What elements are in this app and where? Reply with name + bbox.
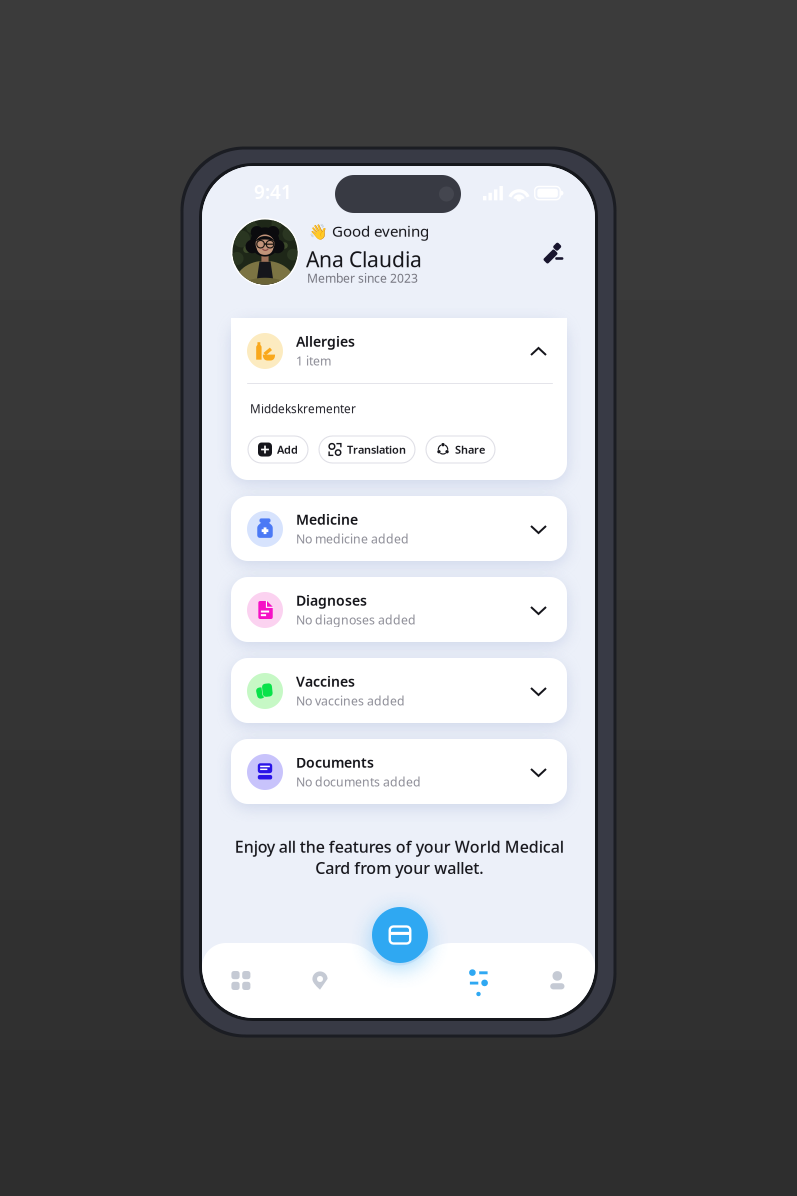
- button[interactable]: Edit profile: [535, 241, 577, 283]
- staticText: No vaccines added: [296, 693, 405, 709]
- button[interactable]: Health data: [469, 968, 489, 998]
- button[interactable]: Translation: [319, 436, 415, 463]
- staticText: Medicine: [296, 510, 358, 529]
- staticText: Enjoy all the features of your World Med…: [234, 836, 563, 878]
- staticText: Vaccines: [296, 672, 355, 691]
- button[interactable]: Documents: [231, 739, 567, 804]
- staticText: Allergies: [296, 332, 355, 351]
- button[interactable]: Locations: [312, 971, 328, 990]
- staticText: Diagnoses: [296, 591, 367, 610]
- button[interactable]: Add: [248, 436, 308, 463]
- button[interactable]: Card: [372, 907, 428, 963]
- staticText: No medicine added: [296, 531, 409, 547]
- staticText: Documents: [296, 753, 374, 772]
- button[interactable]: Profile: [550, 971, 565, 990]
- staticText: Member since 2023: [307, 270, 418, 286]
- staticText: Share: [455, 442, 485, 457]
- staticText: No documents added: [296, 774, 421, 790]
- staticText: Add: [277, 442, 298, 457]
- button[interactable]: Medicine: [231, 496, 567, 561]
- staticText: 9:41: [254, 179, 292, 204]
- staticText: Ana Claudia: [306, 245, 422, 273]
- button[interactable]: Allergies: [231, 318, 567, 383]
- staticText: 👋 Good evening: [309, 221, 429, 241]
- button[interactable]: Share: [426, 436, 495, 463]
- button[interactable]: Vaccines: [231, 658, 567, 723]
- staticText: Translation: [347, 442, 406, 457]
- staticText: No diagnoses added: [296, 612, 416, 628]
- staticText: Middekskrementer: [250, 401, 356, 417]
- button[interactable]: Diagnoses: [231, 577, 567, 642]
- button[interactable]: Dashboard: [231, 971, 250, 990]
- staticText: 1 item: [296, 353, 331, 369]
